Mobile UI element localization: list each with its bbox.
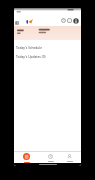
staticText: Today's Updates (0) [16,55,46,59]
button[interactable] [61,18,66,23]
button[interactable] [67,18,72,23]
button[interactable] [62,153,77,164]
button[interactable] [14,26,81,40]
staticText: Today's Schedule [16,46,42,50]
button[interactable] [73,18,79,24]
button[interactable] [15,21,19,25]
button[interactable] [43,153,58,164]
button[interactable] [19,153,34,164]
